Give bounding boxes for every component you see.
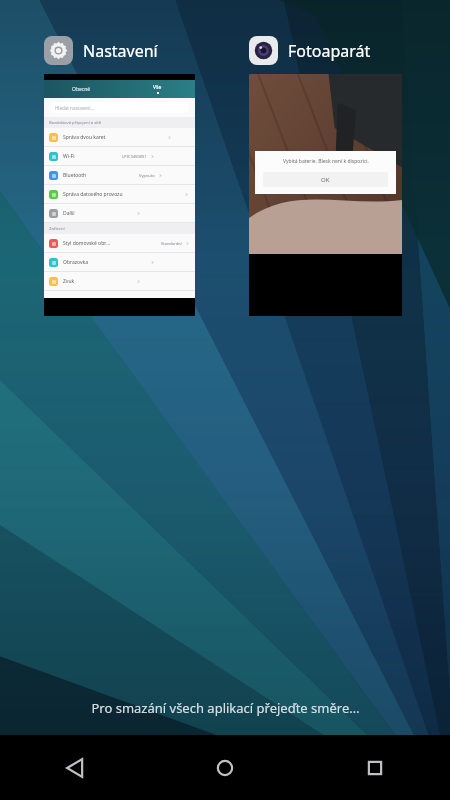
staticText: Správa datového provozu xyxy=(63,191,123,198)
staticText: Fotoaparát xyxy=(288,40,371,62)
staticText: Nastavení xyxy=(83,40,158,62)
staticText: Zařízení xyxy=(49,226,65,232)
button[interactable]: Styl domovské obrazovky xyxy=(44,234,195,252)
staticText: Pro smazání všech aplikací přejeďte směr… xyxy=(91,699,360,717)
button[interactable]: Správa datového provozu xyxy=(44,185,195,203)
staticText: Bluetooth xyxy=(63,172,87,179)
button[interactable]: Hledat nastavení… xyxy=(50,102,189,113)
staticText: Bezdrátová připojení a sítě xyxy=(49,120,102,126)
staticText: LPIC3450891 xyxy=(122,154,147,159)
staticText: Standardní xyxy=(161,241,182,246)
button[interactable]: Nastavení xyxy=(44,36,195,316)
staticText: Hledat nastavení… xyxy=(55,105,95,111)
button[interactable]: Home xyxy=(150,735,300,800)
button[interactable]: Back xyxy=(0,735,150,800)
button[interactable]: OK xyxy=(263,172,388,187)
staticText: OK xyxy=(321,176,330,184)
button[interactable]: Wi-Fi xyxy=(44,147,195,165)
staticText: Další xyxy=(63,210,75,217)
staticText: Správa dvou karet xyxy=(63,134,106,141)
button[interactable]: Bluetooth xyxy=(44,166,195,184)
staticText: Vypnuto xyxy=(139,173,155,178)
staticText: Obrazovka xyxy=(63,259,89,266)
button[interactable]: Obrazovka xyxy=(44,253,195,271)
button[interactable]: Recent apps xyxy=(300,735,450,800)
button[interactable]: Zvuk xyxy=(44,272,195,290)
staticText: Vše xyxy=(153,84,162,91)
staticText: Styl domovské obrazovky xyxy=(63,240,112,247)
staticText: Wi-Fi xyxy=(63,153,75,160)
button[interactable]: Správa dvou karet xyxy=(44,128,195,146)
button[interactable]: Další xyxy=(44,204,195,222)
staticText: Obecné xyxy=(72,86,91,93)
staticText: Zvuk xyxy=(63,278,75,285)
staticText: Vybitá baterie. Blesk není k dispozici. xyxy=(283,158,369,165)
button[interactable]: Fotoaparát xyxy=(249,36,402,316)
